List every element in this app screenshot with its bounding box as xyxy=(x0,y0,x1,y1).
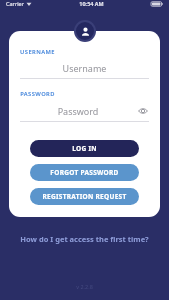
staticText: Carrier xyxy=(6,0,24,7)
staticText: PASSWORD xyxy=(20,90,55,98)
button[interactable]: Show password xyxy=(136,104,149,117)
button[interactable]: REGISTRATION REQUEST xyxy=(30,188,139,205)
staticText: FORGOT PASSWORD xyxy=(50,168,119,177)
button[interactable]: LOG IN xyxy=(30,140,139,157)
staticText: v 2.2.8 xyxy=(76,283,93,290)
button[interactable]: Profile xyxy=(74,20,96,42)
staticText: Username xyxy=(20,62,149,74)
button[interactable]: How do I get access the first time? xyxy=(14,234,155,244)
button[interactable]: FORGOT PASSWORD xyxy=(30,164,139,181)
staticText: Password xyxy=(20,105,136,117)
staticText: How do I get access the first time? xyxy=(20,234,149,244)
staticText: 10:54 AM xyxy=(79,0,104,7)
staticText: REGISTRATION REQUEST xyxy=(42,192,127,201)
staticText: LOG IN xyxy=(72,144,97,153)
staticText: USERNAME xyxy=(20,48,55,56)
